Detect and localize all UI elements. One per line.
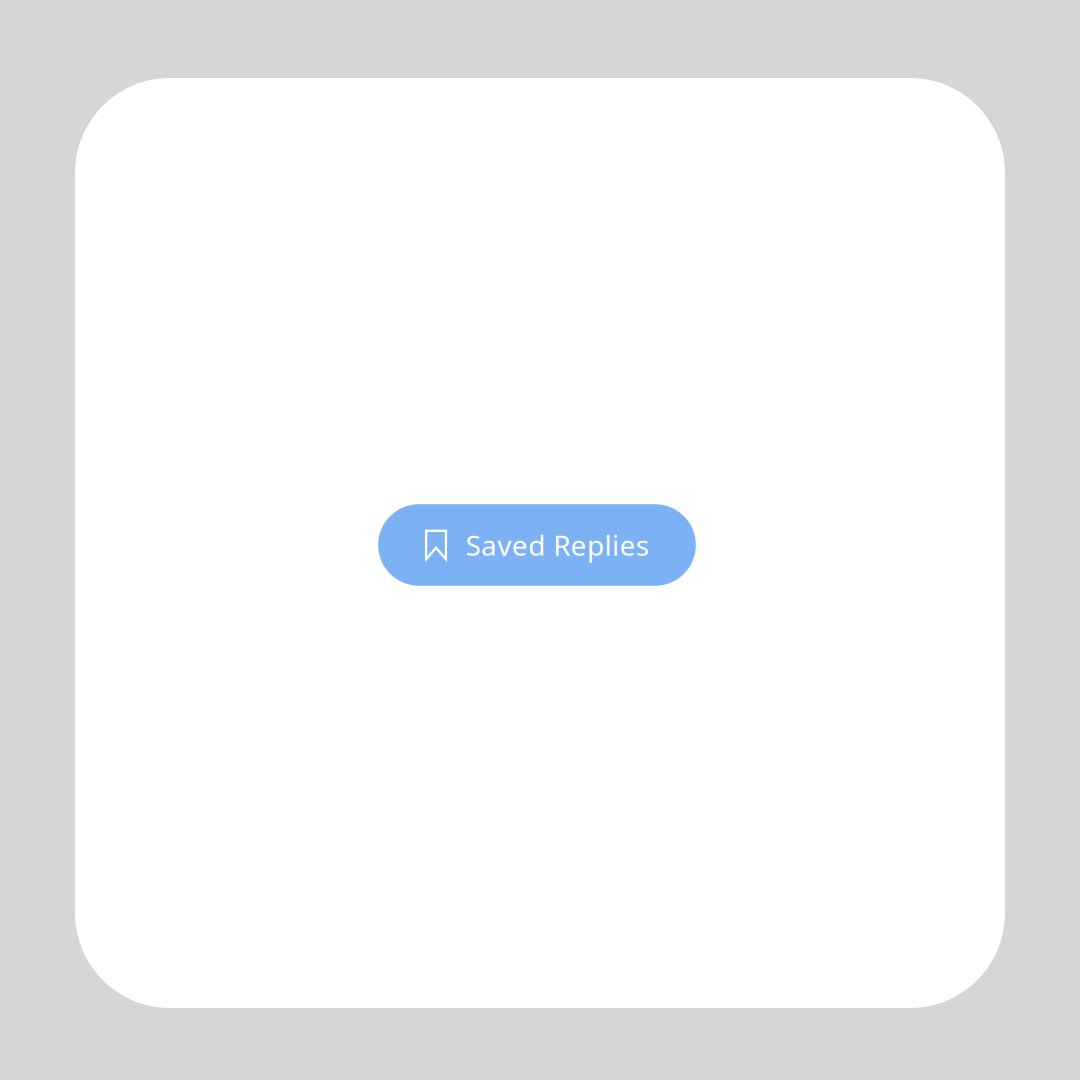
- staticText: Saved Replies: [465, 526, 649, 564]
- button[interactable]: Saved Replies: [378, 504, 696, 586]
